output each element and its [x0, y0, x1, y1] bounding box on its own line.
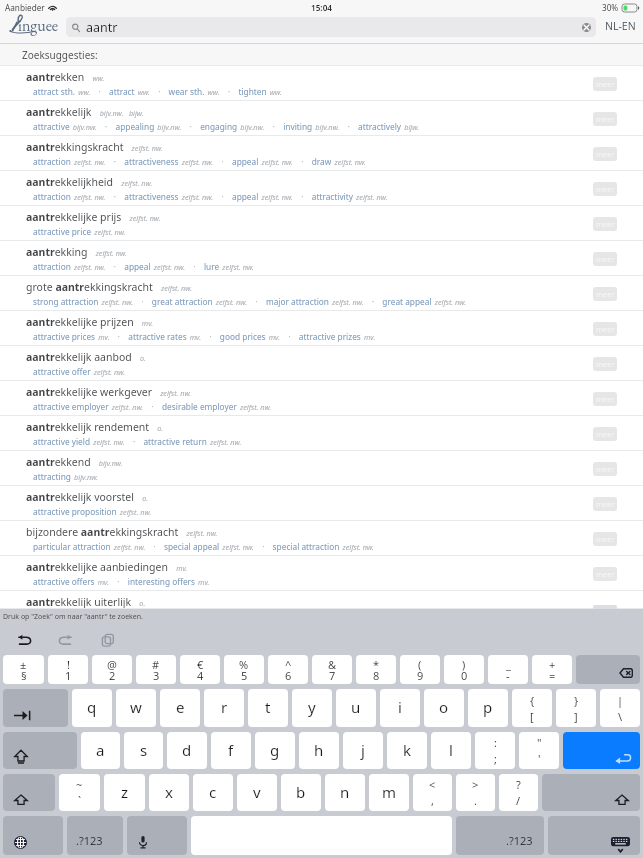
button[interactable]: meer — [593, 462, 617, 476]
button[interactable]: Undo — [9, 625, 39, 655]
button[interactable]: NL-EN — [603, 19, 638, 33]
button[interactable]: Linguee — [6, 13, 55, 34]
button[interactable]: y — [292, 689, 332, 727]
button[interactable]: f — [211, 732, 251, 769]
button[interactable]: aantrekkelijk voorstel o. — [0, 486, 643, 521]
button[interactable]: aantrekken ww. — [0, 66, 643, 101]
button[interactable]: ? — [499, 774, 538, 811]
button[interactable]: * — [356, 655, 396, 684]
button[interactable]: ( — [400, 655, 440, 684]
button[interactable]: aantrekkelijke prijzen mv. — [0, 311, 643, 346]
button[interactable]: v — [237, 774, 277, 811]
button[interactable]: meer — [593, 497, 617, 511]
button[interactable]: b — [281, 774, 321, 811]
button[interactable]: | — [600, 689, 640, 727]
button[interactable]: aantrekkelijk uiterlijk o. — [0, 591, 643, 609]
button[interactable]: aantrekkelijkheid zelfst. nw. — [0, 171, 643, 206]
button[interactable]: Hide keyboard — [548, 816, 640, 855]
button[interactable]: h — [299, 732, 339, 769]
button[interactable]: z — [104, 774, 145, 811]
button[interactable]: u — [336, 689, 376, 727]
button[interactable]: Caps lock — [3, 732, 77, 769]
button[interactable]: aantrekkelijke aanbiedingen mv. — [0, 556, 643, 591]
button[interactable]: meer — [593, 532, 617, 546]
button[interactable]: Redo — [51, 625, 81, 655]
button[interactable]: q — [72, 689, 112, 727]
button[interactable]: } — [556, 689, 596, 727]
staticText: c — [209, 782, 217, 802]
button[interactable]: ! — [48, 655, 88, 684]
button[interactable]: i — [380, 689, 420, 727]
button[interactable]: meer — [593, 322, 617, 336]
button[interactable]: meer — [593, 252, 617, 266]
button[interactable]: o — [424, 689, 464, 727]
button[interactable]: .?123 — [67, 816, 123, 855]
button[interactable]: aantrekkelijke werkgever zelfst. nw. — [0, 381, 643, 416]
other: Hide keyboard — [548, 816, 640, 855]
button[interactable]: bijzondere aantrekkingskracht zelfst. nw… — [0, 521, 643, 556]
button[interactable]: grote aantrekkingskracht zelfst. nw. — [0, 276, 643, 311]
button[interactable]: g — [255, 732, 295, 769]
button[interactable]: meer — [593, 182, 617, 196]
button[interactable]: ± — [3, 655, 44, 684]
button[interactable]: .?123 — [456, 816, 544, 855]
button[interactable]: aantrekkelijke prijs zelfst. nw. — [0, 206, 643, 241]
button[interactable]: aantrekkelijk aanbod o. — [0, 346, 643, 381]
button[interactable]: + — [532, 655, 572, 684]
button[interactable]: aantr — [66, 17, 596, 37]
button[interactable]: x — [149, 774, 189, 811]
button[interactable]: a — [81, 732, 120, 769]
button[interactable]: ^ — [268, 655, 308, 684]
button[interactable]: & — [312, 655, 352, 684]
button[interactable]: Return — [563, 732, 640, 769]
button[interactable]: ) — [444, 655, 484, 684]
button[interactable]: p — [468, 689, 508, 727]
button[interactable]: meer — [593, 217, 617, 231]
button[interactable]: aantrekking zelfst. nw. — [0, 241, 643, 276]
button[interactable]: meer — [593, 147, 617, 161]
button[interactable]: < — [413, 774, 452, 811]
button[interactable]: e — [160, 689, 200, 727]
button[interactable]: meer — [593, 77, 617, 91]
button[interactable]: meer — [593, 567, 617, 581]
button[interactable]: aantrekkelijk bijv.nw. bijw. — [0, 101, 643, 136]
button[interactable]: d — [167, 732, 207, 769]
button[interactable]: meer — [593, 112, 617, 126]
button[interactable]: s — [124, 732, 163, 769]
button[interactable]: @ — [92, 655, 132, 684]
button[interactable]: j — [343, 732, 383, 769]
button[interactable]: Clear search — [582, 23, 591, 32]
button[interactable]: ~ — [59, 774, 100, 811]
button[interactable]: > — [456, 774, 495, 811]
button[interactable]: { — [512, 689, 552, 727]
button[interactable]: r — [204, 689, 244, 727]
button[interactable]: Change keyboard — [3, 816, 63, 855]
button[interactable]: Dictate — [127, 816, 187, 855]
button[interactable]: t — [248, 689, 288, 727]
button[interactable]: : — [475, 732, 515, 769]
button[interactable]: Shift — [3, 774, 55, 811]
button[interactable]: Paste — [93, 625, 123, 655]
button[interactable]: " — [519, 732, 559, 769]
button[interactable]: % — [224, 655, 264, 684]
button[interactable]: meer — [593, 287, 617, 301]
button[interactable]: w — [116, 689, 156, 727]
button[interactable]: # — [136, 655, 176, 684]
button[interactable]: aantrekkelijk rendement o. — [0, 416, 643, 451]
button[interactable]: _ — [488, 655, 528, 684]
button[interactable]: Backspace — [576, 655, 640, 684]
button[interactable]: meer — [593, 427, 617, 441]
button[interactable]: k — [387, 732, 427, 769]
button[interactable]: Tab — [3, 689, 68, 727]
button[interactable]: l — [431, 732, 471, 769]
button[interactable]: n — [325, 774, 365, 811]
button[interactable]: Shift — [542, 774, 640, 811]
button[interactable]: meer — [593, 392, 617, 406]
button[interactable]: aantrekkingskracht zelfst. nw. — [0, 136, 643, 171]
button[interactable]: € — [180, 655, 220, 684]
button[interactable]: m — [369, 774, 409, 811]
button[interactable]: c — [193, 774, 233, 811]
button[interactable]: meer — [593, 357, 617, 371]
button[interactable]: aantrekkend bijv.nw. — [0, 451, 643, 486]
